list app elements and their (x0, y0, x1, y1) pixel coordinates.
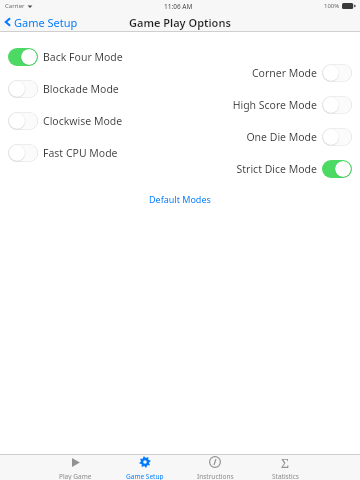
staticText: High Score Mode (232, 98, 317, 112)
button[interactable]: Game Setup (0, 12, 84, 32)
staticText: 11:06 AM (164, 2, 193, 11)
button[interactable]: One Die Mode (180, 121, 360, 153)
staticText: 100% (324, 2, 340, 10)
button[interactable]: Game Setup (110, 454, 180, 480)
button[interactable]: Back Four Mode (0, 41, 180, 73)
staticText: Fast CPU Mode (43, 146, 118, 160)
button[interactable]: Strict Dice Mode (180, 153, 360, 185)
staticText: Blockade Mode (43, 82, 119, 96)
button[interactable]: Σ (250, 454, 320, 480)
button[interactable] (322, 160, 352, 178)
button[interactable]: Default Modes (139, 190, 221, 208)
button[interactable] (8, 80, 38, 98)
staticText: One Die Mode (246, 130, 317, 144)
button[interactable]: Play Game (40, 454, 110, 480)
button[interactable] (8, 144, 38, 162)
staticText: Default Modes (149, 193, 211, 205)
staticText: Strict Dice Mode (236, 162, 317, 176)
staticText: Game Play Options (129, 15, 231, 30)
button[interactable]: Blockade Mode (0, 73, 180, 105)
staticText: Corner Mode (251, 66, 317, 80)
button[interactable]: Corner Mode (180, 57, 360, 89)
button[interactable] (8, 112, 38, 130)
button[interactable] (322, 96, 352, 114)
staticText: Game Setup (126, 472, 164, 480)
staticText: Play Game (59, 472, 92, 480)
staticText: Back Four Mode (43, 50, 123, 64)
button[interactable] (322, 64, 352, 82)
button[interactable] (322, 128, 352, 146)
button[interactable]: Fast CPU Mode (0, 137, 180, 169)
button[interactable]: Clockwise Mode (0, 105, 180, 137)
staticText: Carrier (5, 2, 25, 10)
button[interactable]: High Score Mode (180, 89, 360, 121)
staticText: Game Setup (14, 15, 78, 30)
staticText: Σ (281, 454, 289, 470)
button[interactable]: Instructions (180, 454, 250, 480)
button[interactable] (8, 48, 38, 66)
staticText: Clockwise Mode (43, 114, 123, 128)
staticText: Statistics (272, 472, 299, 480)
staticText: Instructions (197, 472, 234, 480)
